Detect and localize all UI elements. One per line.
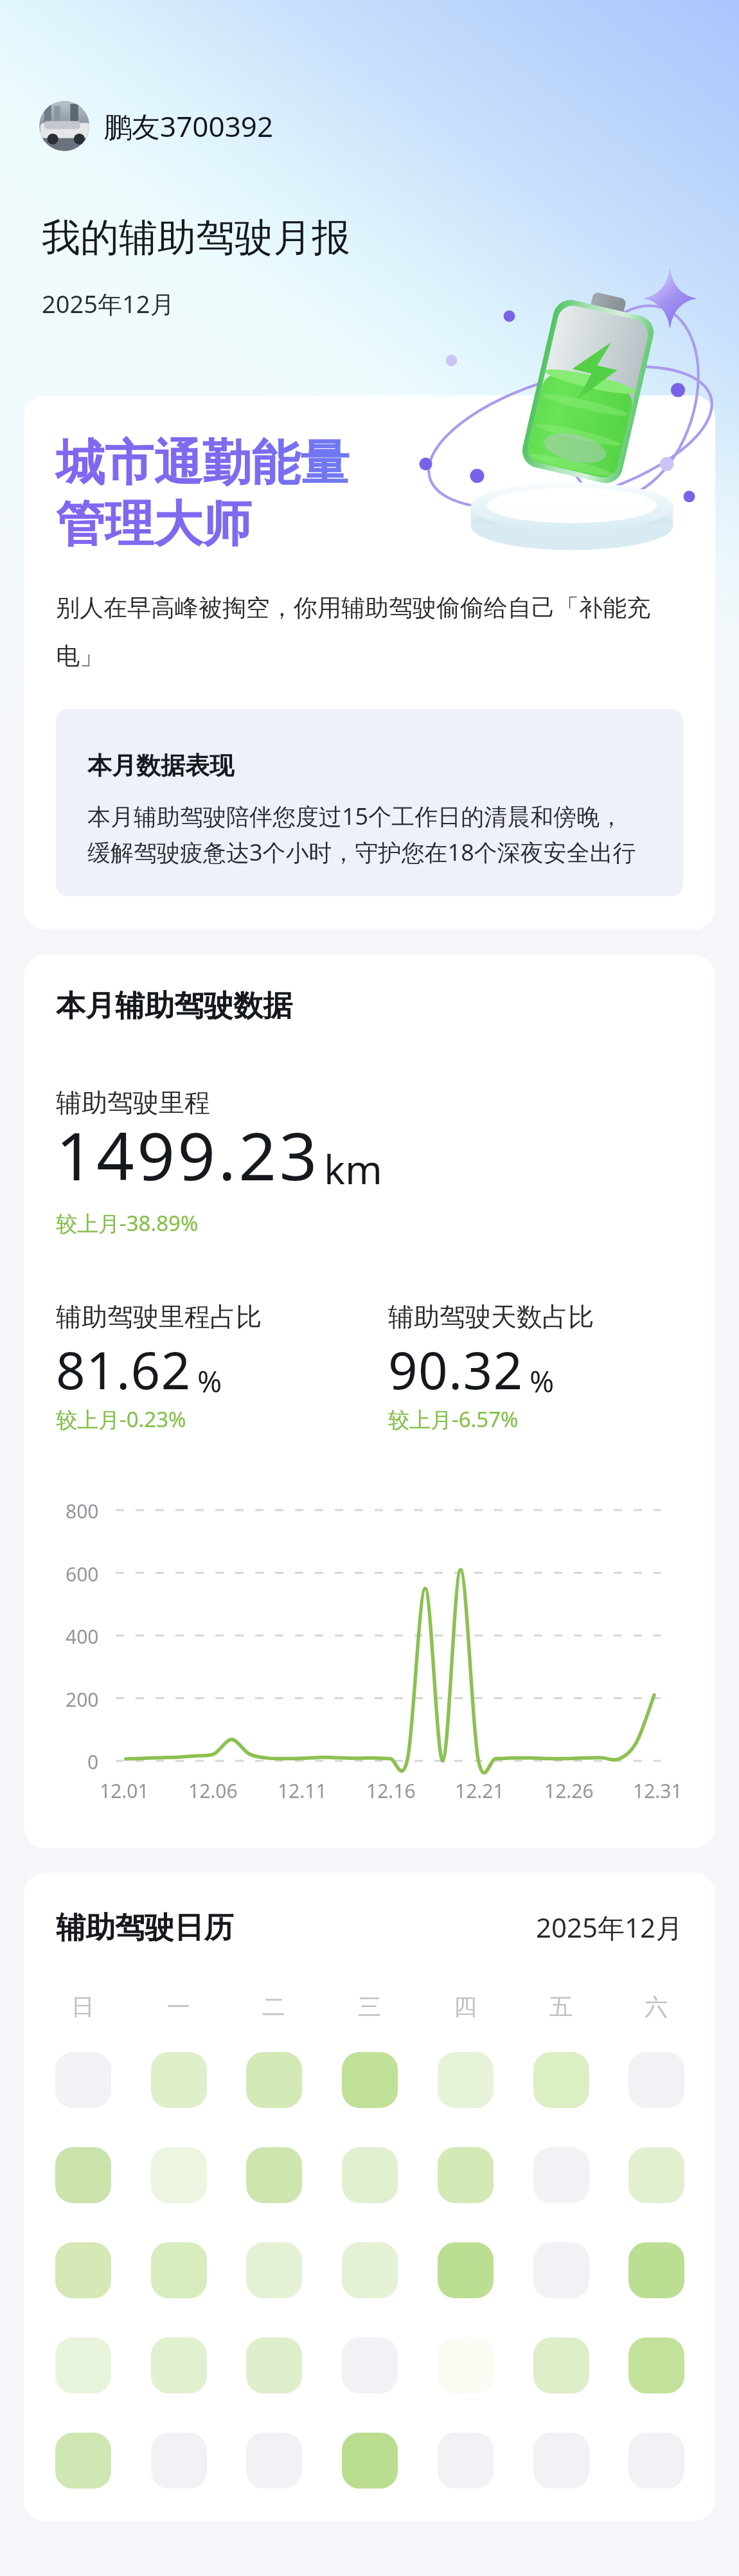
button[interactable]: 本月辅助驾驶数据 <box>24 955 715 1848</box>
button[interactable]: 12月31日 <box>246 2433 302 2489</box>
button[interactable]: 12月32日 <box>342 2433 398 2489</box>
staticText: 2025年12月 <box>536 1909 683 1945</box>
staticText: 0 <box>87 1749 99 1775</box>
button[interactable]: 12月30日 <box>151 2433 207 2489</box>
button[interactable]: 城市通勤能量 管理大师 <box>24 395 715 930</box>
staticText: 12.31 <box>633 1778 682 1804</box>
staticText: 日 <box>71 1992 94 2021</box>
staticText: 城市通勤能量 管理大师 <box>56 433 349 555</box>
button[interactable]: 12月5日 <box>438 2052 494 2108</box>
staticText: 较上月-6.57% <box>388 1405 519 1434</box>
staticText: 辅助驾驶里程占比 <box>56 1301 262 1333</box>
staticText: 较上月-38.89% <box>56 1209 199 1238</box>
staticText: 本月数据表现 <box>87 750 234 781</box>
button[interactable]: 12月13日 <box>533 2147 589 2203</box>
staticText: 81.62 <box>56 1334 191 1404</box>
button[interactable]: 鹏友3700392 <box>39 101 281 151</box>
staticText: % <box>530 1361 555 1401</box>
staticText: 辅助驾驶里程 <box>56 1086 210 1119</box>
button[interactable]: 12月26日 <box>438 2337 494 2393</box>
button[interactable]: 12月18日 <box>342 2242 398 2298</box>
button[interactable]: 12月24日 <box>246 2337 302 2393</box>
staticText: 二 <box>262 1992 285 2021</box>
button[interactable]: 12月9日 <box>151 2147 207 2203</box>
button[interactable]: 12月22日 <box>55 2337 111 2393</box>
staticText: 400 <box>66 1623 99 1650</box>
button[interactable]: 12月7日 <box>628 2052 684 2108</box>
button[interactable]: 12月28日 <box>628 2337 684 2393</box>
staticText: 1499.23 <box>56 1110 320 1200</box>
staticText: 本月辅助驾驶数据 <box>56 987 292 1025</box>
button[interactable]: 12月3日 <box>246 2052 302 2108</box>
staticText: 12.26 <box>544 1778 594 1804</box>
button[interactable]: 12月12日 <box>438 2147 494 2203</box>
staticText: 三 <box>358 1992 381 2021</box>
button[interactable]: 12月16日 <box>151 2242 207 2298</box>
staticText: % <box>197 1361 222 1401</box>
staticText: 辅助驾驶天数占比 <box>388 1301 594 1333</box>
staticText: 四 <box>454 1992 477 2021</box>
button[interactable]: 12月15日 <box>55 2242 111 2298</box>
button[interactable]: 12月27日 <box>533 2337 589 2393</box>
staticText: km <box>324 1142 383 1196</box>
staticText: 辅助驾驶日历 <box>56 1909 233 1947</box>
staticText: 12.16 <box>366 1778 416 1804</box>
staticText: 90.32 <box>388 1334 524 1404</box>
staticText: 我的辅助驾驶月报 <box>42 213 350 262</box>
staticText: 200 <box>66 1686 99 1713</box>
staticText: 本月辅助驾驶陪伴您度过15个工作日的清晨和傍晚， 缓解驾驶疲惫达3个小时，守护您… <box>87 800 636 868</box>
staticText: 别人在早高峰被掏空，你用辅助驾驶偷偷给自己「补能充电」 <box>56 593 683 671</box>
button[interactable]: 12月4日 <box>342 2052 398 2108</box>
staticText: 2025年12月 <box>42 287 175 320</box>
staticText: 六 <box>645 1992 668 2021</box>
staticText: 较上月-0.23% <box>56 1405 186 1434</box>
staticText: 12.21 <box>455 1778 504 1804</box>
staticText: 12.01 <box>100 1778 149 1804</box>
button[interactable]: 12月17日 <box>246 2242 302 2298</box>
button[interactable]: 12月21日 <box>628 2242 684 2298</box>
button[interactable]: 12月2日 <box>151 2052 207 2108</box>
button[interactable]: 12月25日 <box>342 2337 398 2393</box>
button[interactable]: 12月23日 <box>151 2337 207 2393</box>
staticText: 12.11 <box>278 1778 327 1804</box>
staticText: 五 <box>549 1992 573 2021</box>
button[interactable]: 12月34日 <box>533 2433 589 2489</box>
button[interactable]: 12月1日 <box>55 2052 111 2108</box>
staticText: 一 <box>167 1992 190 2021</box>
button[interactable]: 12月29日 <box>55 2433 111 2489</box>
staticText: 800 <box>66 1498 99 1524</box>
button[interactable]: 12月8日 <box>55 2147 111 2203</box>
button[interactable]: 12月10日 <box>246 2147 302 2203</box>
button[interactable]: 12月14日 <box>628 2147 684 2203</box>
staticText: 鹏友3700392 <box>103 107 274 145</box>
button[interactable]: 12月35日 <box>628 2433 684 2489</box>
button[interactable]: 12月11日 <box>342 2147 398 2203</box>
staticText: 12.06 <box>188 1778 238 1804</box>
other: 能量电池插画 <box>404 270 725 566</box>
button[interactable]: 12月6日 <box>533 2052 589 2108</box>
staticText: 600 <box>66 1561 99 1587</box>
button[interactable]: 12月33日 <box>438 2433 494 2489</box>
button[interactable]: 12月20日 <box>533 2242 589 2298</box>
button[interactable]: 辅助驾驶日历 <box>24 1873 715 2521</box>
button[interactable]: 12月19日 <box>438 2242 494 2298</box>
